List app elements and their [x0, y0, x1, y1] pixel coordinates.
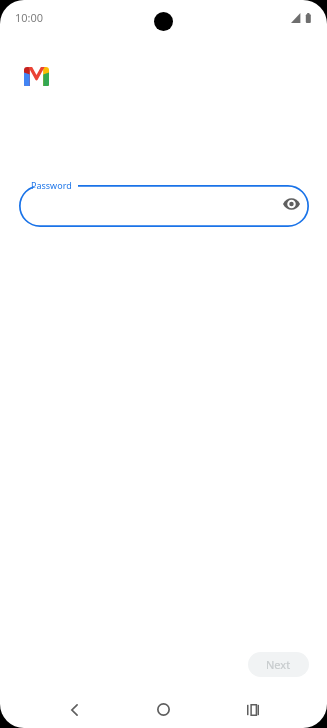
- button[interactable]: Password: [19, 185, 309, 227]
- button[interactable]: Next: [248, 652, 309, 677]
- staticText: Password: [31, 179, 72, 191]
- staticText: Next: [266, 657, 291, 672]
- button[interactable]: Recent apps: [240, 697, 265, 722]
- button[interactable]: Back: [62, 697, 87, 722]
- button[interactable]: Show password: [279, 192, 303, 216]
- button[interactable]: Home: [151, 697, 176, 722]
- staticText: 10:00: [15, 10, 44, 25]
